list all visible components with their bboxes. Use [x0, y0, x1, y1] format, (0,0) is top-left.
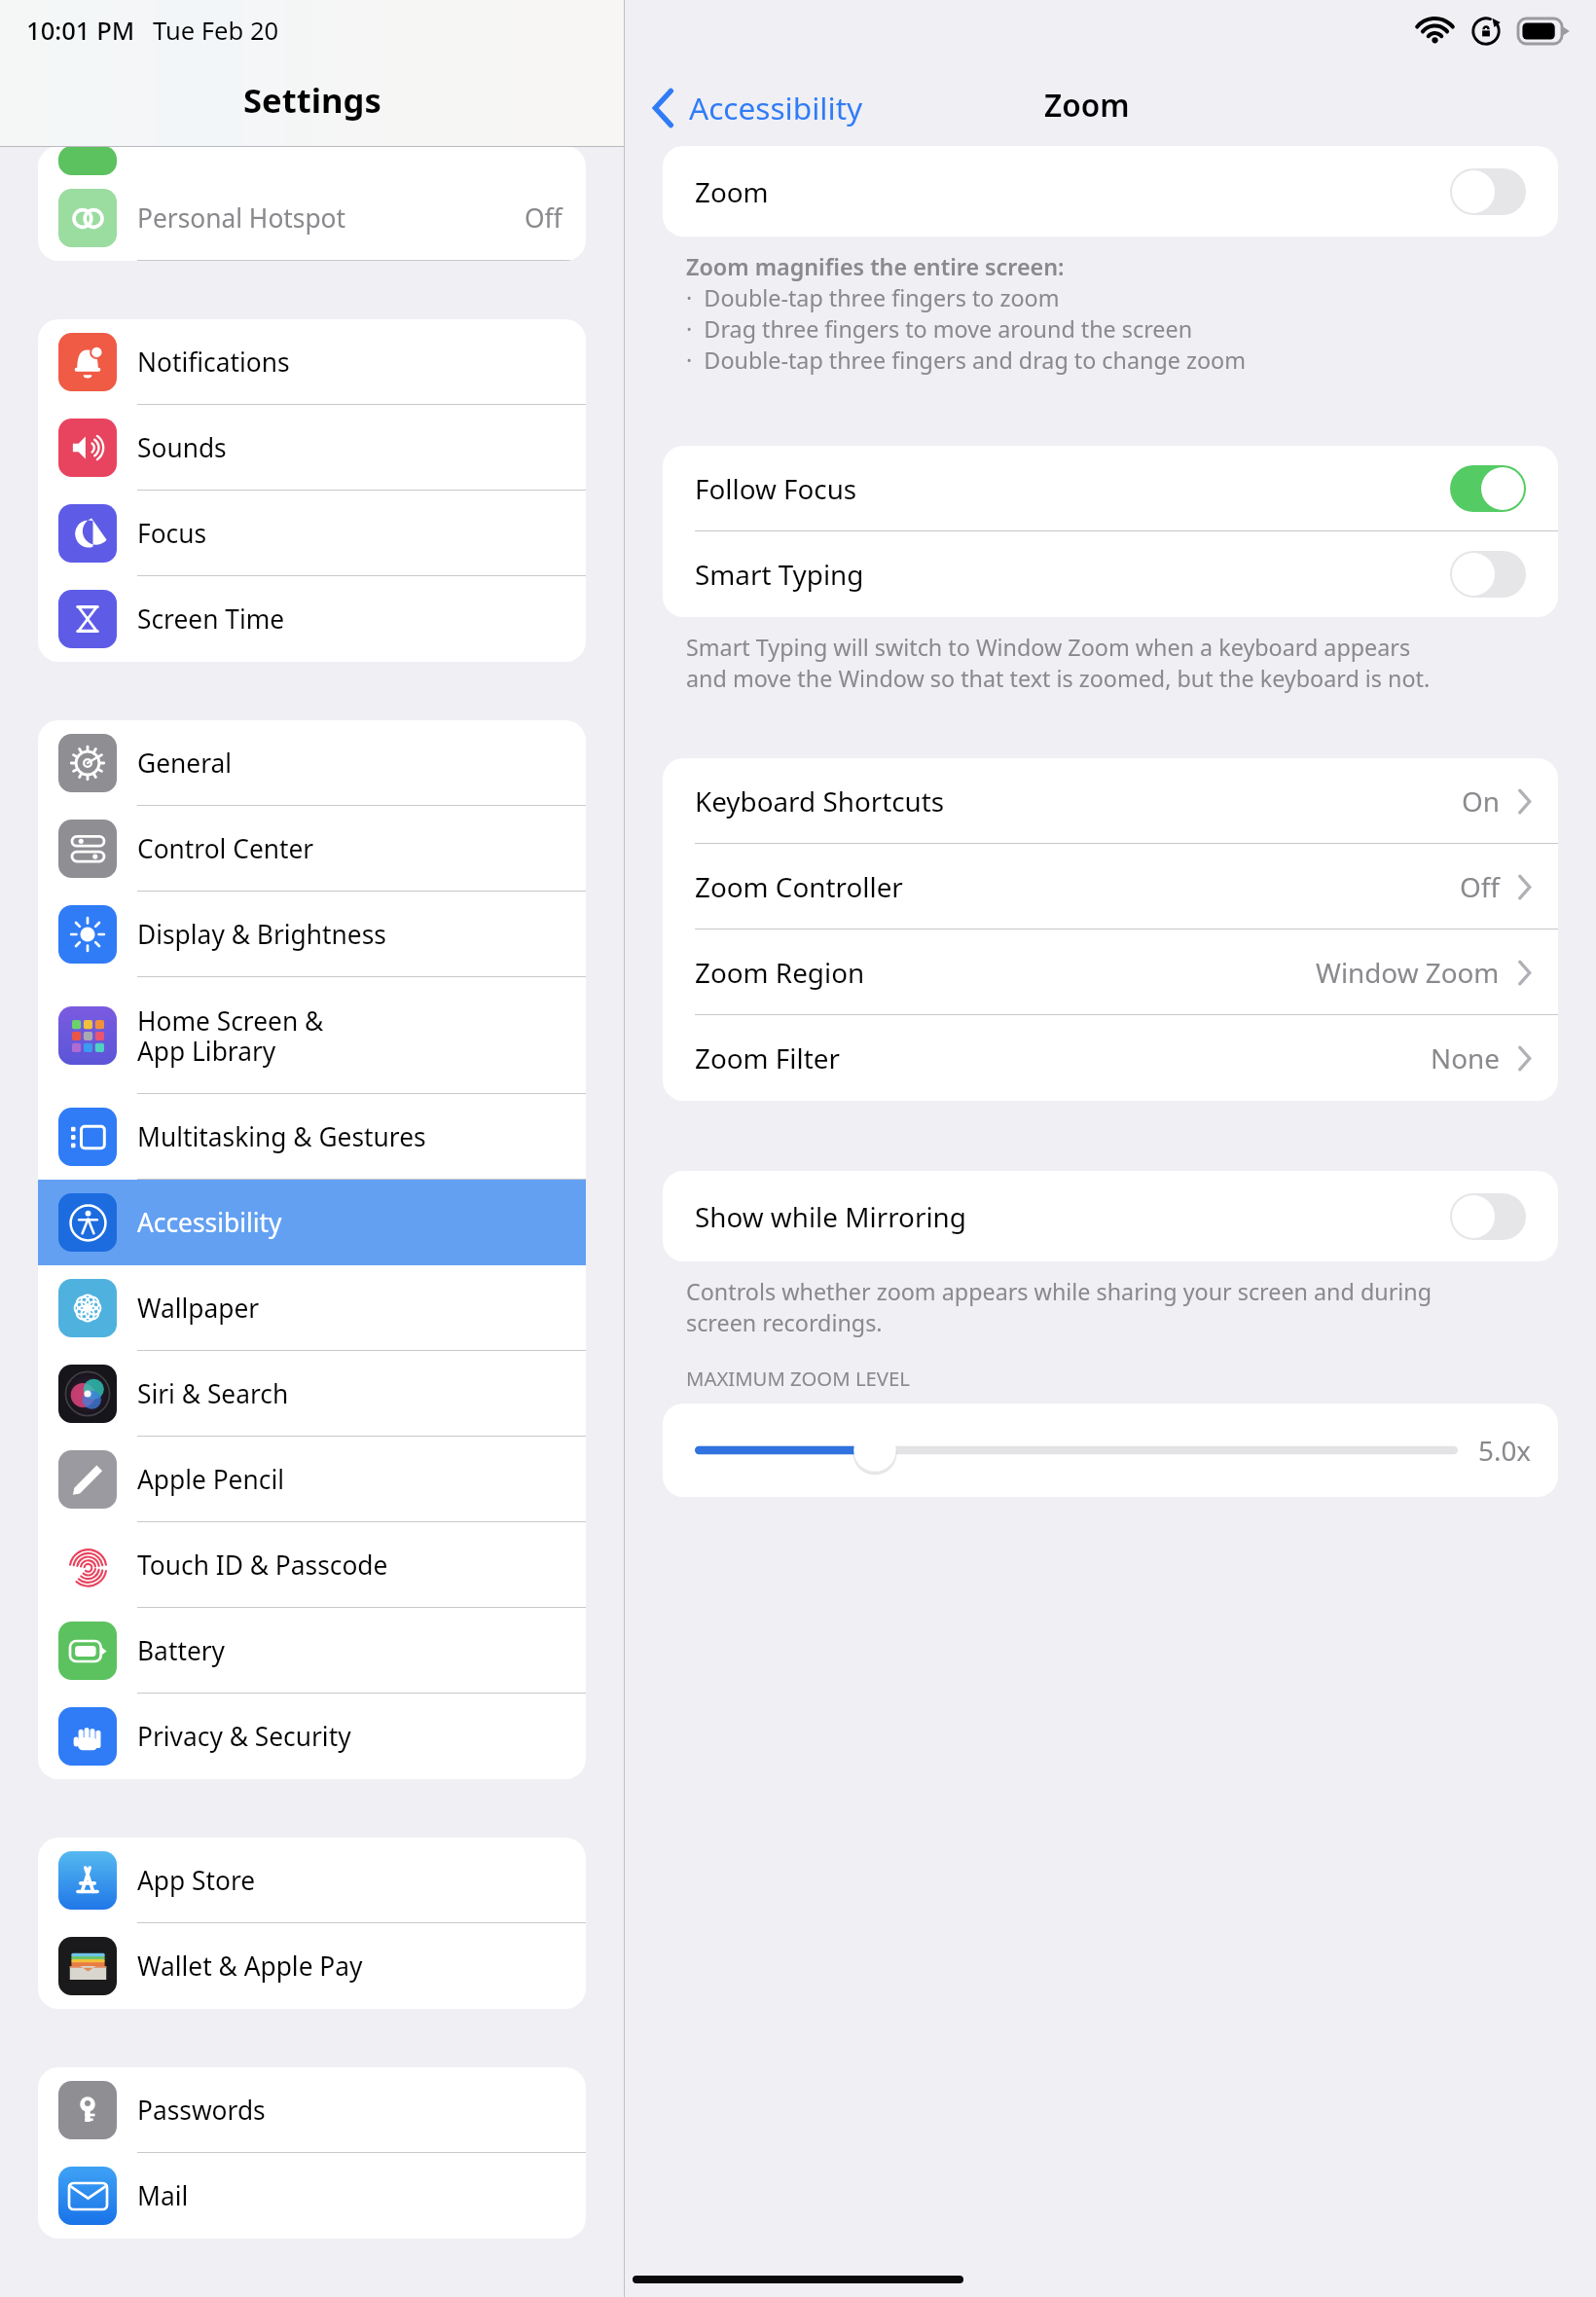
button[interactable]: Battery — [38, 1608, 586, 1694]
staticText: Accessibility — [137, 1205, 586, 1240]
staticText: On — [1462, 783, 1500, 820]
staticText: Keyboard Shortcuts — [695, 783, 1462, 820]
staticText: Window Zoom — [1316, 954, 1500, 991]
staticText: Display & Brightness — [137, 917, 586, 952]
button[interactable]: Toggle on — [1450, 465, 1526, 512]
button[interactable]: Accessibility — [38, 1180, 586, 1265]
button[interactable]: Mail — [38, 2153, 586, 2239]
staticText: Apple Pencil — [137, 1462, 586, 1497]
staticText: Show while Mirroring — [695, 1198, 1450, 1235]
staticText: Zoom — [695, 173, 1450, 210]
staticText: screen recordings. — [686, 1307, 883, 1338]
button[interactable]: Apple Pencil — [38, 1437, 586, 1522]
staticText: Privacy & Security — [137, 1719, 586, 1754]
button[interactable]: Siri & Search — [38, 1351, 586, 1437]
staticText: Sounds — [137, 430, 586, 465]
staticText: 5.0x — [1478, 1432, 1532, 1469]
button[interactable]: Accessibility — [651, 87, 863, 128]
staticText: Smart Typing will switch to Window Zoom … — [686, 632, 1411, 663]
staticText: None — [1431, 1039, 1500, 1076]
button[interactable]: Touch ID & Passcode — [38, 1522, 586, 1608]
staticText: App Store — [137, 1863, 586, 1898]
staticText: Zoom — [1044, 84, 1130, 126]
staticText: · Drag three fingers to move around the … — [686, 313, 1193, 345]
button[interactable]: Display & Brightness — [38, 892, 586, 977]
staticText: Tue Feb 20 — [153, 14, 279, 48]
button[interactable]: Control Center — [38, 806, 586, 892]
staticText: Follow Focus — [695, 470, 1450, 507]
staticText: Home Screen & App Library — [137, 1003, 586, 1068]
staticText: Off — [1460, 868, 1500, 905]
button[interactable]: 5.0x — [663, 1404, 1558, 1497]
staticText: Passwords — [137, 2093, 586, 2128]
staticText: Zoom magnifies the entire screen: — [686, 251, 1065, 282]
staticText: Smart Typing — [695, 556, 1450, 593]
staticText: Focus — [137, 516, 586, 551]
staticText: Touch ID & Passcode — [137, 1548, 586, 1583]
button[interactable]: Show while Mirroring — [663, 1171, 1558, 1261]
staticText: General — [137, 746, 586, 781]
button[interactable]: Screen Time — [38, 576, 586, 662]
button[interactable]: Zoom Region — [663, 930, 1558, 1015]
staticText: Multitasking & Gestures — [137, 1119, 586, 1154]
staticText: MAXIMUM ZOOM LEVEL — [686, 1365, 910, 1392]
button[interactable]: Privacy & Security — [38, 1694, 586, 1779]
staticText: · Double-tap three fingers to zoom — [686, 282, 1060, 313]
button[interactable]: Toggle off — [1450, 551, 1526, 598]
staticText: Zoom Region — [695, 954, 1316, 991]
button[interactable]: Focus — [38, 491, 586, 576]
staticText: Zoom Filter — [695, 1039, 1431, 1076]
button[interactable]: Zoom — [663, 146, 1558, 237]
staticText: · Double-tap three fingers and drag to c… — [686, 345, 1246, 376]
staticText: Notifications — [137, 345, 586, 380]
button[interactable]: Personal Hotspot — [38, 175, 586, 261]
button[interactable] — [38, 146, 586, 175]
staticText: Siri & Search — [137, 1376, 586, 1411]
button[interactable]: Toggle off — [1450, 1193, 1526, 1240]
staticText: Accessibility — [689, 87, 863, 128]
staticText: Mail — [137, 2178, 586, 2213]
staticText: Zoom Controller — [695, 868, 1460, 905]
button[interactable]: Keyboard Shortcuts — [663, 758, 1558, 844]
staticText: Controls whether zoom appears while shar… — [686, 1276, 1433, 1307]
staticText: Control Center — [137, 831, 586, 866]
staticText: Wallpaper — [137, 1291, 586, 1326]
staticText: 10:01 PM — [26, 14, 135, 48]
button[interactable]: Wallet & Apple Pay — [38, 1923, 586, 2009]
button[interactable]: Sounds — [38, 405, 586, 491]
button[interactable]: Zoom Filter — [663, 1015, 1558, 1101]
button[interactable]: Zoom Controller — [663, 844, 1558, 930]
button[interactable]: Smart Typing — [663, 531, 1558, 617]
button[interactable]: Passwords — [38, 2067, 586, 2153]
staticText: Wallet & Apple Pay — [137, 1949, 586, 1984]
staticText: Battery — [137, 1633, 586, 1668]
staticText: Screen Time — [137, 602, 586, 637]
staticText: Settings — [243, 77, 381, 123]
button[interactable]: Wallpaper — [38, 1265, 586, 1351]
staticText: and move the Window so that text is zoom… — [686, 663, 1431, 694]
button[interactable]: Follow Focus — [663, 446, 1558, 531]
button[interactable]: Multitasking & Gestures — [38, 1094, 586, 1180]
button[interactable]: General — [38, 720, 586, 806]
button[interactable]: Toggle off — [1450, 168, 1526, 215]
staticText: Off — [525, 201, 562, 236]
button[interactable]: Notifications — [38, 319, 586, 405]
staticText: Personal Hotspot — [137, 201, 525, 236]
button[interactable]: Home Screen & App Library — [38, 977, 586, 1094]
button[interactable]: App Store — [38, 1838, 586, 1923]
